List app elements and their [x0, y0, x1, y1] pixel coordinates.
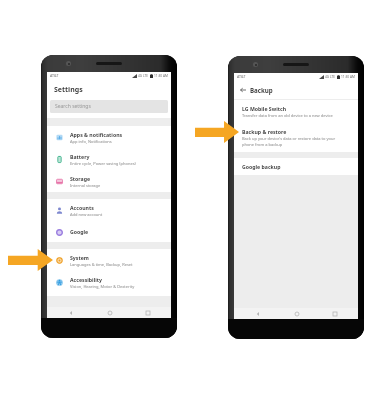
button[interactable]: Backup & restore [234, 123, 358, 152]
staticText: 11:30 AM [154, 74, 168, 78]
button[interactable]: Accessibility [47, 271, 171, 293]
button[interactable]: Navigate up [240, 86, 273, 94]
button[interactable]: Recent apps [144, 309, 151, 316]
staticText: Languages & time, Backup, Reset [70, 262, 133, 267]
staticText: AT&T [237, 74, 246, 79]
staticText: App info, Notifications [70, 139, 112, 144]
staticText: Entire cycle, Power saving (phones) [70, 161, 136, 166]
button[interactable]: Battery [47, 148, 171, 170]
staticText: Back up your device's data or restore da… [242, 136, 336, 141]
button[interactable]: Recent apps [331, 310, 338, 317]
button[interactable]: Google backup [234, 158, 358, 175]
staticText: Vision, Hearing, Motor & Dexterity [70, 284, 135, 289]
button[interactable]: Home [293, 310, 300, 317]
staticText: Battery [70, 153, 90, 160]
button[interactable]: Back [67, 309, 74, 316]
staticText: 4G LTE [325, 75, 336, 79]
staticText: Google [70, 228, 89, 235]
button[interactable]: Storage [47, 170, 171, 192]
staticText: Internal storage [70, 183, 101, 188]
staticText: LG Mobile Switch [242, 105, 287, 112]
staticText: Backup [250, 86, 273, 94]
button[interactable]: Apps & notifications [47, 126, 171, 148]
staticText: Accessibility [70, 276, 102, 283]
staticText: Google backup [242, 163, 281, 170]
staticText: 11:30 AM [341, 75, 355, 79]
staticText: Storage [70, 175, 91, 182]
button[interactable]: Accounts [47, 199, 171, 221]
staticText: Transfer data from an old device to a ne… [242, 113, 333, 118]
staticText: Search settings [55, 103, 91, 110]
button[interactable]: Search settings [50, 100, 168, 113]
button[interactable]: LG Mobile Switch [234, 100, 358, 123]
button[interactable]: System [47, 249, 171, 271]
staticText: Apps & notifications [70, 131, 123, 138]
staticText: phone from a backup [242, 142, 283, 147]
staticText: Settings [54, 85, 83, 95]
staticText: Backup & restore [242, 128, 287, 135]
other: Navigate up [240, 87, 246, 93]
button[interactable]: Google [47, 221, 171, 242]
staticText: Accounts [70, 204, 94, 211]
staticText: Add new account [70, 212, 103, 217]
staticText: AT&T [50, 73, 59, 78]
staticText: System [70, 254, 89, 261]
button[interactable]: Back [254, 310, 261, 317]
button[interactable]: Home [106, 309, 113, 316]
staticText: 4G LTE [138, 74, 149, 78]
